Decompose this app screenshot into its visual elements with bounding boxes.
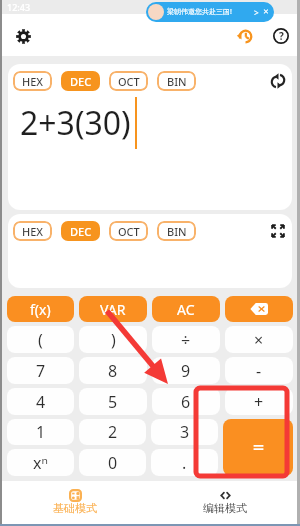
button[interactable]: 7	[7, 357, 74, 384]
staticText: 4	[36, 391, 46, 413]
button[interactable]: OCT	[109, 221, 148, 241]
button[interactable]: xⁿ	[7, 449, 74, 476]
button[interactable]: HEX	[13, 71, 52, 91]
button[interactable]: .	[151, 449, 218, 476]
staticText: 12:43	[7, 1, 31, 13]
button[interactable]: AC	[152, 296, 220, 322]
button[interactable]: Settings	[9, 21, 37, 49]
staticText: )	[111, 329, 116, 351]
staticText: ?	[279, 29, 284, 43]
staticText: 2	[108, 421, 118, 443]
staticText: +	[254, 391, 264, 413]
staticText: 梁朝伟邀您共赴三国!	[167, 7, 232, 17]
staticText: 2+3(30)	[20, 101, 131, 145]
button[interactable]: DEC	[61, 71, 100, 91]
staticText: BIN	[167, 224, 187, 239]
staticText: f(x)	[30, 300, 51, 319]
staticText: >	[254, 7, 259, 18]
staticText: 0	[108, 452, 118, 474]
button[interactable]: Refresh	[266, 69, 290, 93]
button[interactable]: History	[232, 22, 258, 48]
staticText: (	[38, 329, 43, 351]
staticText: -	[256, 360, 262, 382]
staticText: VAR	[100, 300, 126, 319]
staticText: 基础模式	[53, 501, 97, 515]
button[interactable]: 1	[7, 419, 74, 445]
staticText: 1	[36, 421, 46, 443]
staticText: xⁿ	[33, 452, 48, 474]
button[interactable]: OCT	[109, 71, 148, 91]
staticText: DEC	[70, 74, 92, 89]
staticText: DEC	[70, 224, 92, 239]
staticText: HEX	[22, 74, 44, 89]
button[interactable]: 梁朝伟邀您共赴三国!	[146, 2, 274, 22]
button[interactable]: )	[79, 326, 147, 353]
staticText: 8	[108, 360, 118, 382]
staticText: 3	[180, 421, 190, 443]
staticText: .	[182, 452, 187, 474]
button[interactable]: Help	[268, 22, 294, 48]
staticText: 5	[108, 391, 118, 413]
staticText: BIN	[167, 74, 187, 89]
button[interactable]: BIN	[157, 71, 196, 91]
staticText: AC	[177, 300, 195, 319]
staticText: 6	[181, 391, 191, 413]
button[interactable]: 4	[7, 388, 74, 415]
button[interactable]: Expand	[266, 219, 290, 243]
button[interactable]: 9	[152, 357, 220, 384]
staticText: 7	[36, 360, 46, 382]
button[interactable]	[223, 419, 293, 476]
staticText: ×	[254, 329, 264, 351]
button[interactable]: +	[225, 388, 293, 415]
button[interactable]: HEX	[13, 221, 52, 241]
staticText: 9	[181, 360, 191, 382]
button[interactable]: ÷	[152, 326, 220, 353]
button[interactable]: -	[225, 357, 293, 384]
button[interactable]: (	[7, 326, 74, 353]
staticText: 编辑模式	[203, 501, 247, 515]
button[interactable]: VAR	[79, 296, 147, 322]
button[interactable]: 0	[79, 449, 146, 476]
button[interactable]: 8	[79, 357, 147, 384]
staticText: OCT	[118, 74, 140, 89]
button[interactable]: ×	[225, 326, 293, 353]
button[interactable]: Backspace	[225, 296, 293, 322]
button[interactable]: 5	[79, 388, 147, 415]
button[interactable]: 基础模式	[0, 481, 150, 526]
button[interactable]: DEC	[61, 221, 100, 241]
button[interactable]: 3	[151, 419, 218, 445]
button[interactable]: f(x)	[7, 296, 74, 322]
staticText: OCT	[118, 224, 140, 239]
button[interactable]: 2	[79, 419, 146, 445]
button[interactable]: 6	[152, 388, 220, 415]
staticText: HEX	[22, 224, 44, 239]
staticText: ✕	[263, 8, 269, 16]
button[interactable]: 编辑模式	[150, 481, 300, 526]
button[interactable]: BIN	[157, 221, 196, 241]
staticText: ÷	[181, 329, 191, 351]
